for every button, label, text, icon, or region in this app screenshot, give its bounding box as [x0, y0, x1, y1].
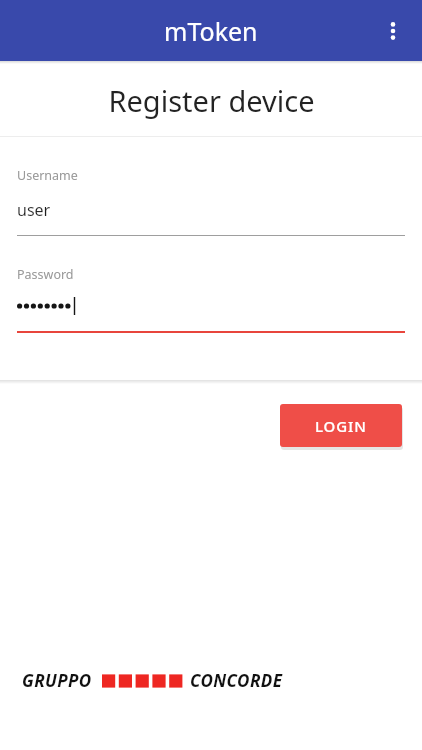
staticText: Password — [17, 266, 74, 283]
staticText: mToken — [164, 14, 258, 48]
button[interactable]: Password — [0, 266, 422, 333]
button[interactable]: LOGIN — [280, 404, 402, 447]
staticText: Username — [17, 167, 78, 184]
staticText: GRUPPO — [22, 669, 92, 692]
button[interactable]: Username — [0, 167, 422, 236]
staticText: CONCORDE — [190, 669, 283, 692]
staticText: user — [17, 199, 51, 221]
staticText: LOGIN — [315, 416, 367, 436]
staticText: Register device — [108, 81, 315, 120]
button[interactable]: More options — [370, 8, 416, 54]
